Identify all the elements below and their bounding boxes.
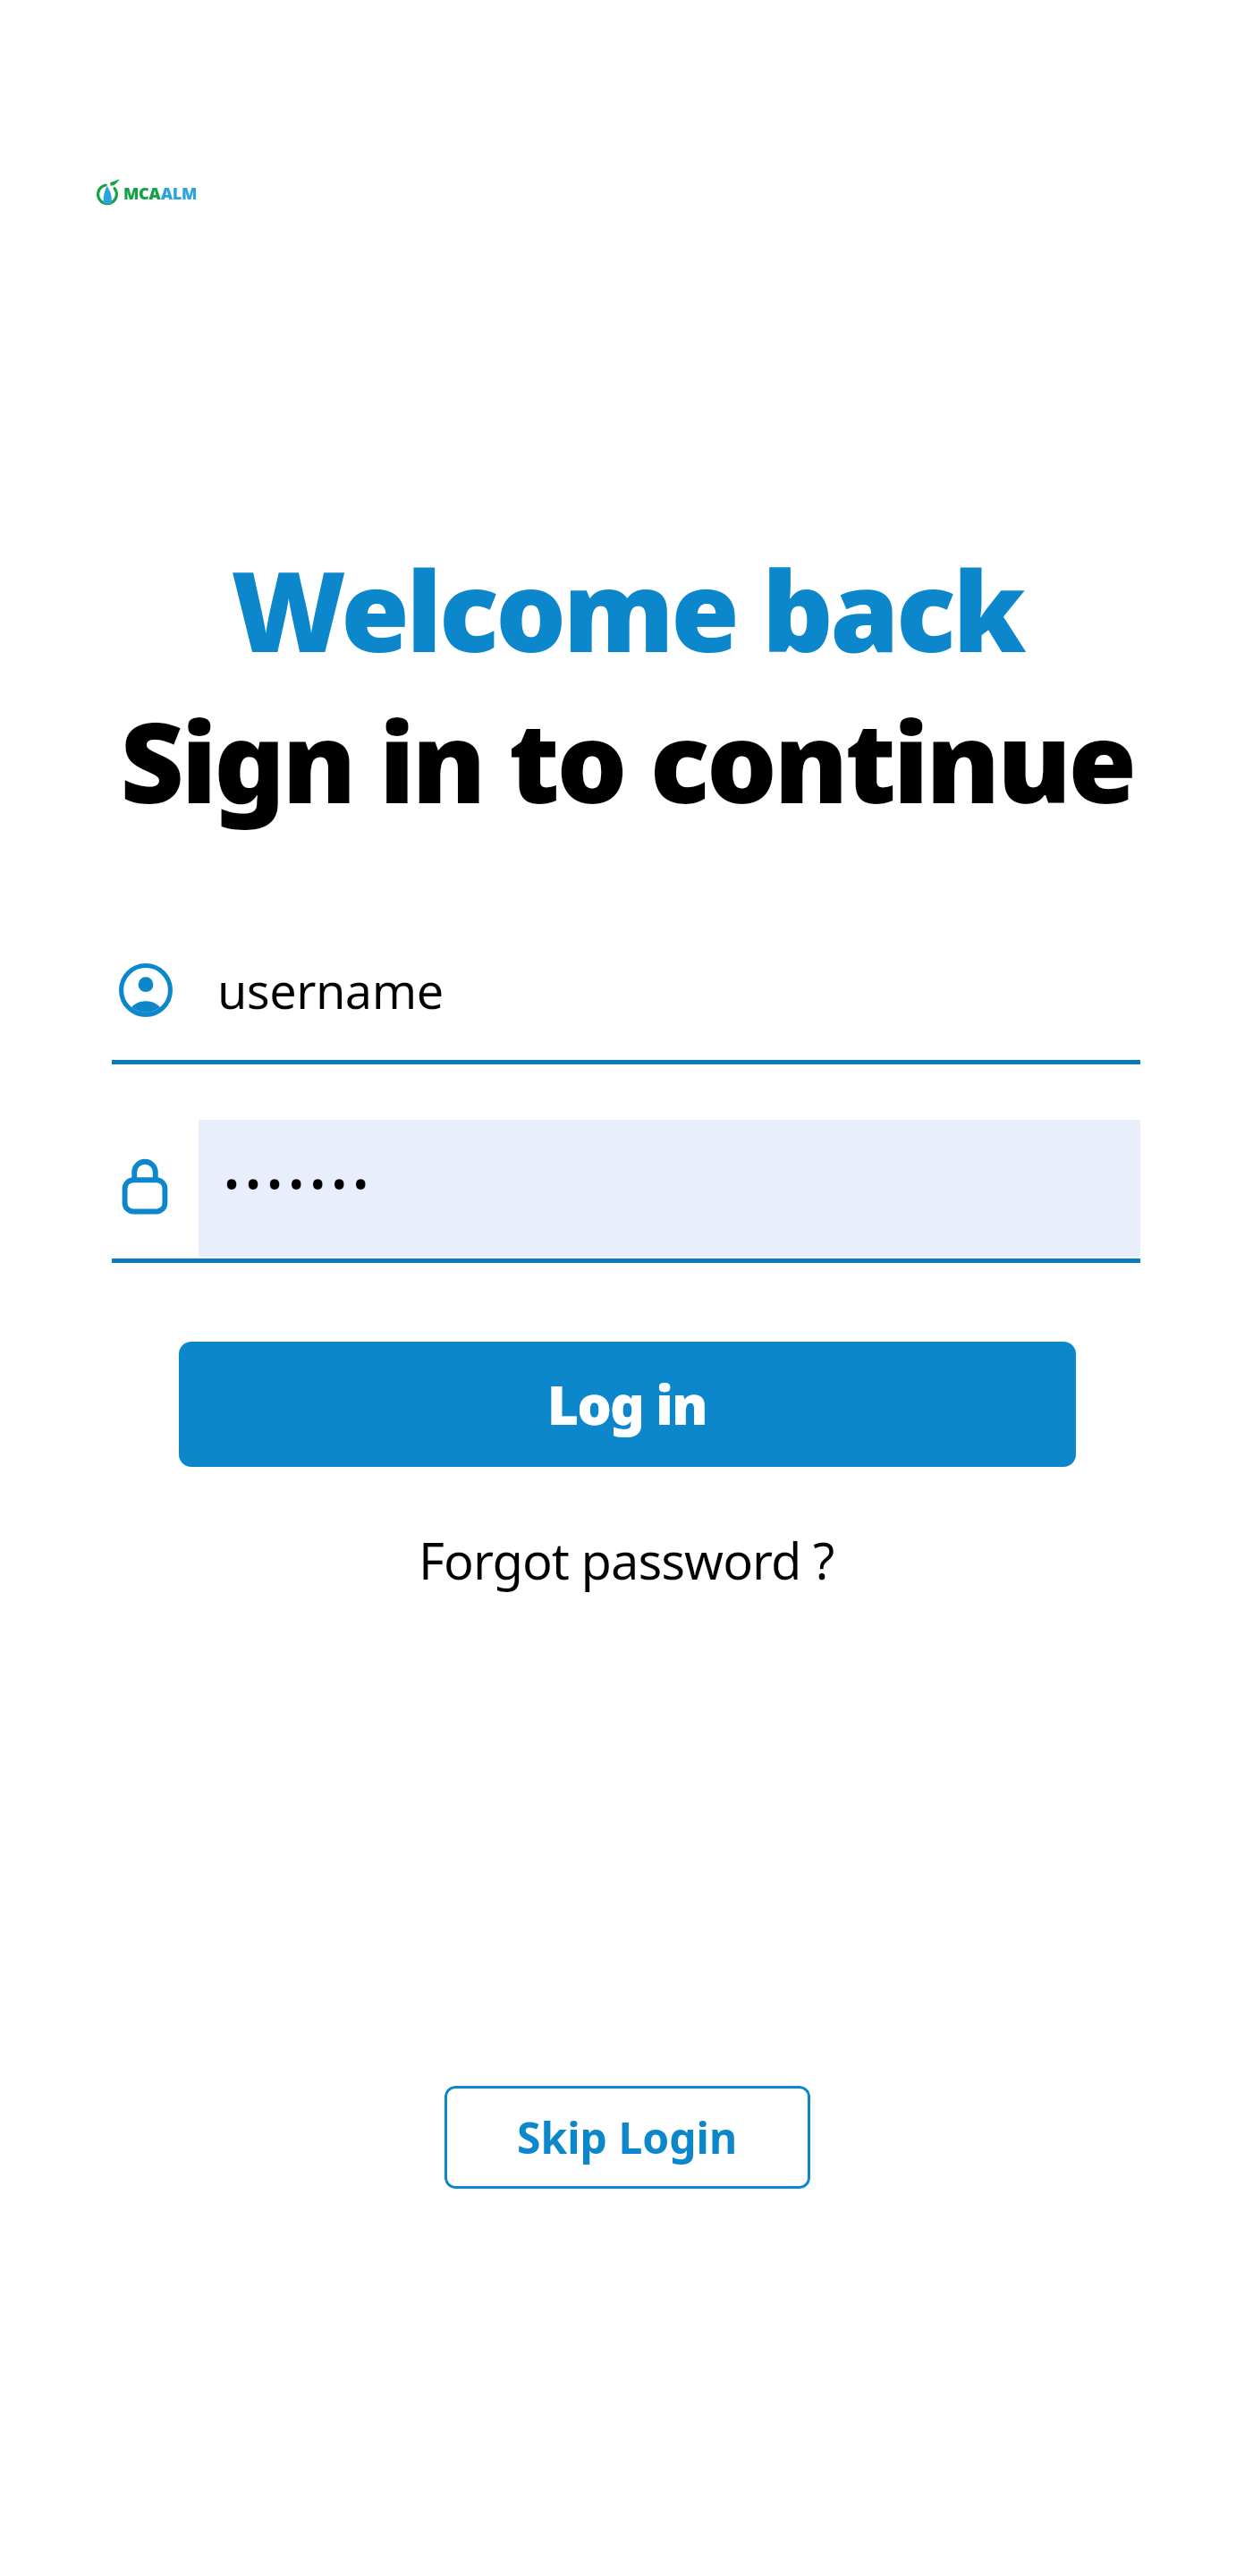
staticText: Welcome back — [231, 533, 1023, 684]
staticText: Log in — [547, 1368, 707, 1441]
staticText: Forgot password ? — [419, 1526, 834, 1594]
staticText: username — [217, 957, 444, 1023]
button[interactable]: Forgot password ? — [404, 1517, 849, 1603]
other: Username — [119, 963, 173, 1017]
staticText: ••••••• — [224, 1154, 375, 1212]
other: Password — [120, 1157, 170, 1214]
button[interactable]: Username — [97, 930, 1156, 1064]
staticText: Sign in to continue — [120, 684, 1134, 835]
staticText: ALM — [161, 182, 198, 205]
button[interactable]: Skip Login — [444, 2086, 810, 2189]
button[interactable]: Password — [97, 1114, 1156, 1263]
staticText: Skip Login — [517, 2108, 738, 2166]
staticText: MCA — [123, 182, 161, 205]
button[interactable]: Log in — [179, 1342, 1076, 1467]
